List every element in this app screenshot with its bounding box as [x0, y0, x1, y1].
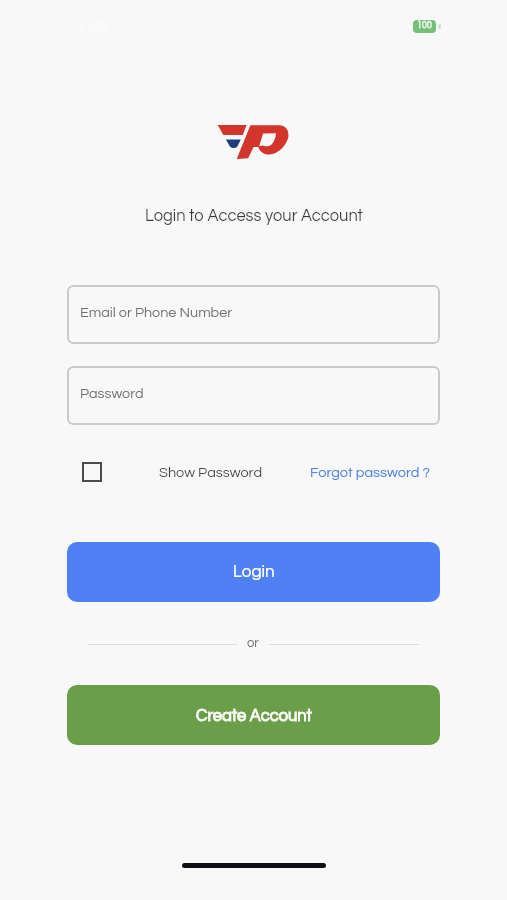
- button[interactable]: Show Password: [159, 465, 263, 480]
- staticText: Email or Phone Number: [80, 305, 233, 320]
- button[interactable]: Create Account: [67, 685, 440, 745]
- staticText: 100: [417, 21, 432, 30]
- staticText: Login: [233, 563, 275, 581]
- button[interactable]: Email or Phone Number: [67, 285, 440, 344]
- staticText: Create Account: [196, 707, 312, 724]
- staticText: Login to Access your Account: [145, 207, 363, 224]
- button[interactable]: Login: [67, 542, 440, 602]
- button[interactable]: Forgot password ?: [310, 465, 430, 480]
- button[interactable]: Password: [67, 366, 440, 425]
- button[interactable]: Show password: [82, 462, 102, 482]
- staticText: or: [247, 636, 259, 649]
- staticText: Password: [80, 386, 144, 401]
